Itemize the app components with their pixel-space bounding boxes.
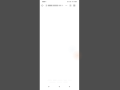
- button[interactable]: Back: [40, 82, 53, 90]
- button[interactable]: Home: [53, 82, 66, 90]
- button[interactable]: Site settings: [40, 6, 44, 10]
- button[interactable]: Address bar: [44, 5, 71, 10]
- button[interactable]: Tabs: [71, 6, 75, 10]
- button[interactable]: Recent apps: [66, 82, 79, 90]
